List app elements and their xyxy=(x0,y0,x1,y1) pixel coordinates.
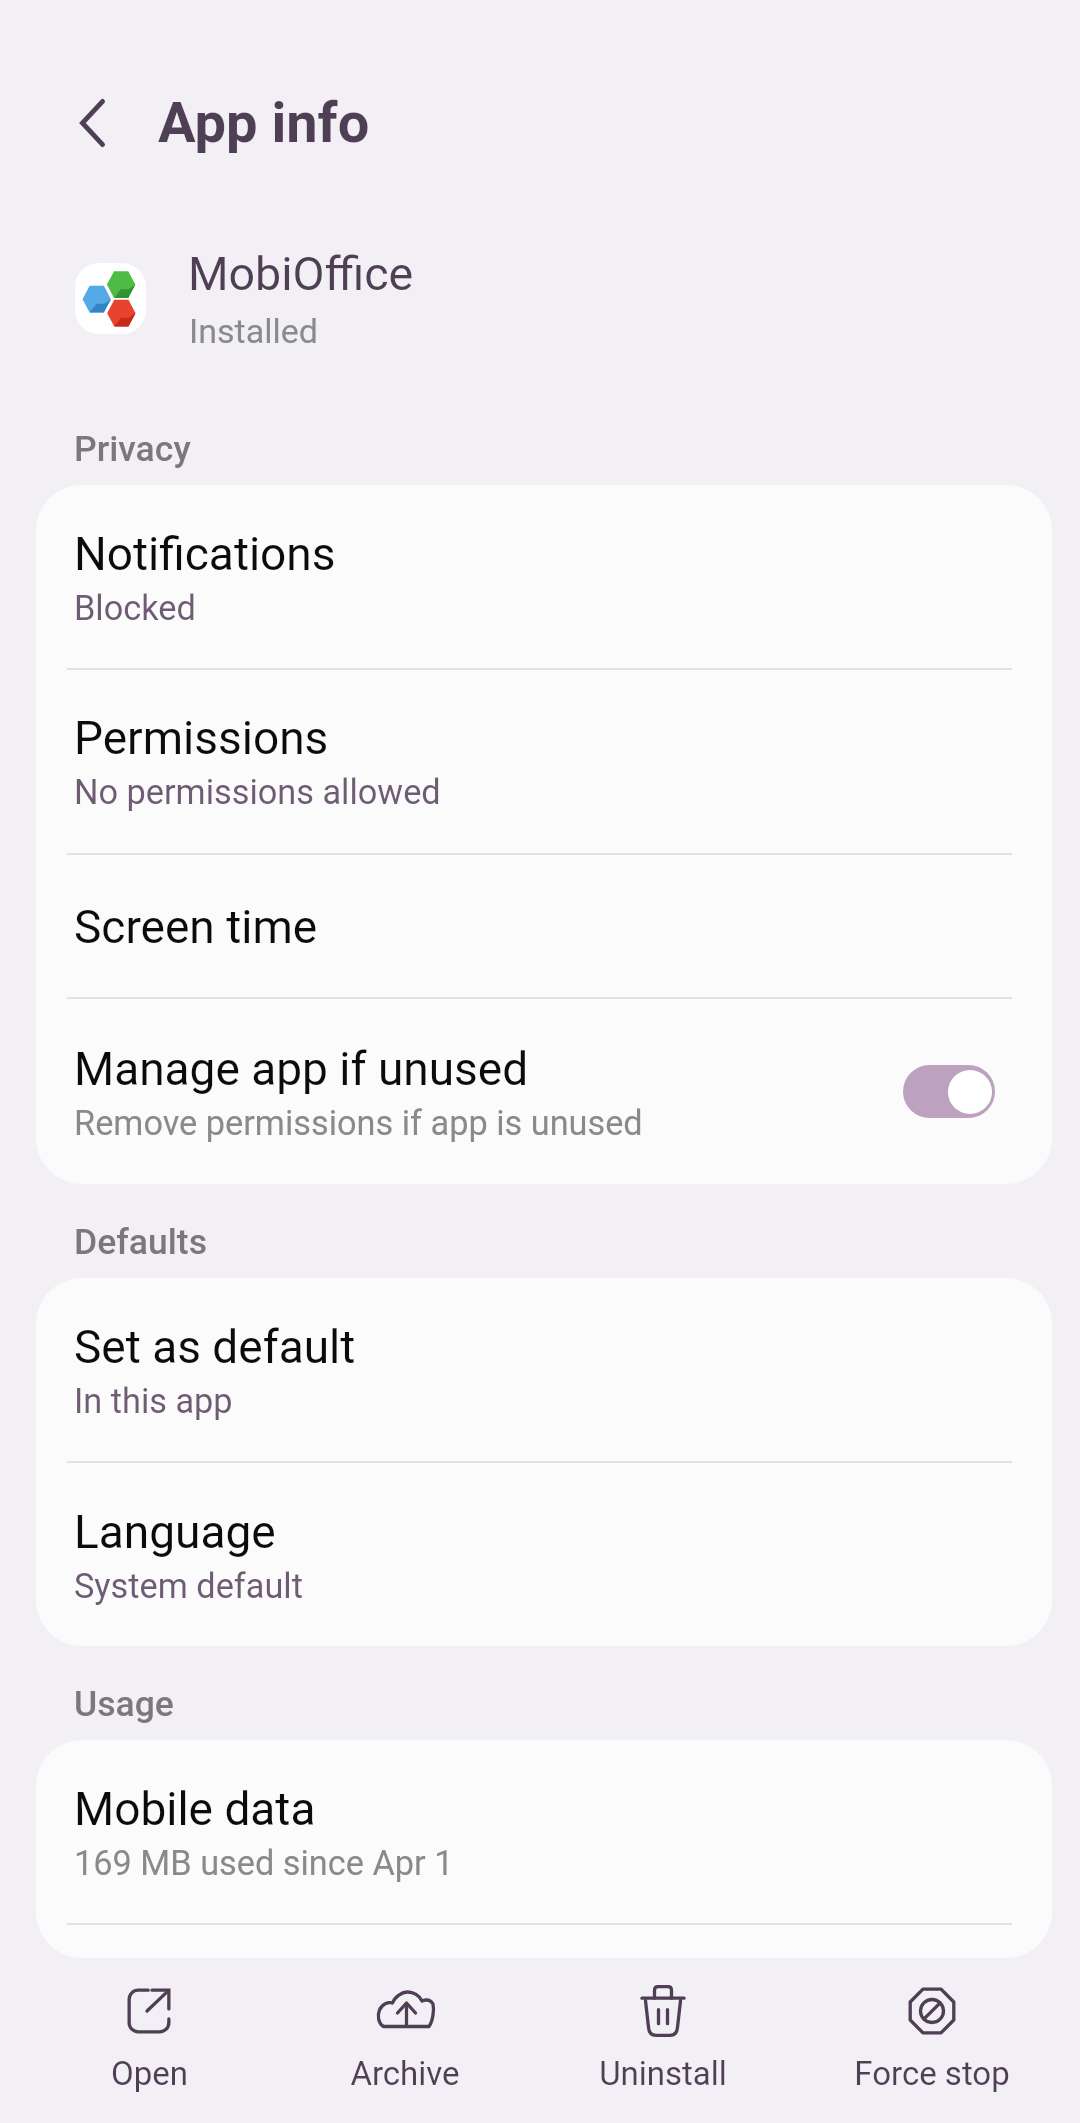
staticText: No permissions allowed xyxy=(74,772,441,812)
staticText: Set as default xyxy=(74,1320,356,1374)
staticText: Notifications xyxy=(74,527,336,581)
staticText: Language xyxy=(74,1505,276,1559)
staticText: Defaults xyxy=(74,1221,208,1263)
button[interactable]: Force stop xyxy=(794,1959,1070,2123)
staticText: Blocked xyxy=(74,588,196,628)
staticText: Installed xyxy=(189,311,318,351)
button[interactable]: Manage app if unused xyxy=(903,1065,995,1118)
button[interactable]: Back xyxy=(53,83,132,162)
button[interactable]: Set as default xyxy=(36,1278,1052,1461)
staticText: 169 MB used since Apr 1 xyxy=(74,1843,454,1883)
staticText: Screen time xyxy=(74,900,318,954)
staticText: App info xyxy=(158,90,370,156)
staticText: Open xyxy=(111,2054,188,2093)
button[interactable]: Language xyxy=(36,1463,1052,1646)
staticText: Manage app if unused xyxy=(74,1042,529,1096)
button[interactable]: Permissions xyxy=(36,670,1052,853)
button[interactable]: Notifications xyxy=(36,485,1052,668)
staticText: In this app xyxy=(74,1381,233,1421)
button[interactable]: Uninstall xyxy=(531,1959,794,2123)
staticText: System default xyxy=(74,1566,303,1606)
staticText: Force stop xyxy=(854,2054,1010,2093)
button[interactable]: Open xyxy=(12,1959,286,2123)
staticText: Mobile data xyxy=(74,1782,316,1836)
button[interactable]: Screen time xyxy=(36,855,1052,997)
button[interactable]: Manage app if unused xyxy=(36,999,1052,1184)
staticText: MobiOffice xyxy=(188,247,414,301)
staticText: Usage xyxy=(74,1683,174,1725)
staticText: Privacy xyxy=(74,428,191,470)
staticText: Remove permissions if app is unused xyxy=(74,1103,643,1143)
staticText: Archive xyxy=(350,2054,460,2093)
button[interactable]: Mobile data xyxy=(36,1740,1052,1923)
staticText: Permissions xyxy=(74,711,329,765)
staticText: Uninstall xyxy=(599,2054,727,2093)
button[interactable]: Archive xyxy=(278,1959,532,2123)
